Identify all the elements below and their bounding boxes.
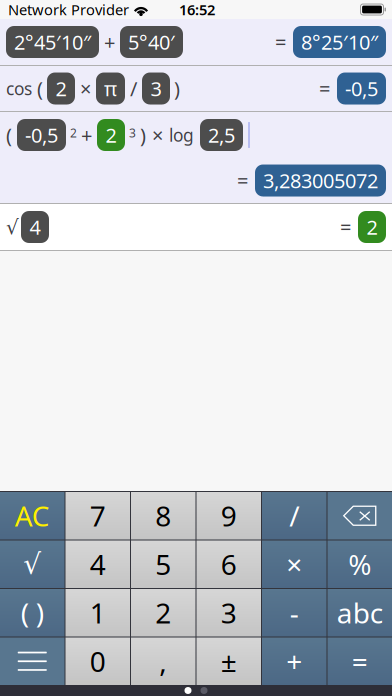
- button[interactable]: √: [0, 540, 64, 588]
- staticText: (: [37, 75, 43, 102]
- staticText: 3: [150, 75, 161, 102]
- staticText: =: [237, 167, 248, 194]
- button[interactable]: 1: [65, 589, 130, 636]
- button[interactable]: AC: [0, 492, 64, 539]
- staticText: 2: [366, 214, 377, 240]
- staticText: Network Provider: [8, 0, 129, 19]
- staticText: log: [169, 123, 194, 146]
- button[interactable]: +: [262, 637, 326, 685]
- staticText: +: [104, 29, 115, 55]
- staticText: 4: [29, 214, 40, 240]
- staticText: 2°45′10″: [14, 29, 91, 55]
- staticText: 0: [90, 643, 106, 680]
- staticText: ×: [152, 122, 163, 148]
- staticText: √: [23, 548, 41, 580]
- staticText: 4: [90, 546, 106, 583]
- button[interactable]: 6: [196, 540, 261, 588]
- staticText: +: [286, 643, 302, 680]
- staticText: ( ): [21, 594, 44, 631]
- staticText: -0,5: [345, 75, 378, 102]
- staticText: ): [174, 75, 180, 102]
- button[interactable]: /: [262, 492, 326, 539]
- staticText: π: [104, 75, 117, 102]
- staticText: 2: [155, 594, 171, 631]
- staticText: 5°40′: [128, 29, 175, 55]
- staticText: 3,283005072: [263, 167, 378, 194]
- staticText: cos: [6, 77, 32, 100]
- staticText: 5: [155, 546, 171, 583]
- button[interactable]: 3: [196, 589, 261, 636]
- button[interactable]: =: [327, 637, 392, 685]
- button[interactable]: Delete: [327, 492, 392, 539]
- button[interactable]: 2: [131, 589, 195, 636]
- staticText: =: [275, 29, 286, 55]
- button[interactable]: 5: [131, 540, 195, 588]
- staticText: 3: [221, 594, 237, 631]
- staticText: (: [6, 122, 12, 148]
- button[interactable]: Menu: [0, 637, 64, 685]
- staticText: 2: [55, 75, 66, 102]
- staticText: 9: [221, 497, 237, 534]
- button[interactable]: ,: [131, 637, 195, 685]
- staticText: /: [130, 75, 137, 102]
- button[interactable]: ×: [262, 540, 326, 588]
- staticText: abc: [337, 594, 383, 631]
- staticText: /: [289, 497, 299, 534]
- staticText: 8: [155, 497, 171, 534]
- staticText: √: [6, 216, 19, 238]
- staticText: ×: [80, 75, 91, 102]
- staticText: 1: [90, 594, 106, 631]
- staticText: 2: [70, 125, 77, 141]
- button[interactable]: 9: [196, 492, 261, 539]
- button[interactable]: abc: [327, 589, 392, 636]
- staticText: 16:52: [179, 0, 215, 19]
- button[interactable]: %: [327, 540, 392, 588]
- staticText: 7: [90, 497, 106, 534]
- staticText: AC: [15, 497, 50, 534]
- staticText: 3: [129, 125, 136, 141]
- staticText: 2,5: [208, 122, 235, 148]
- staticText: =: [340, 214, 351, 240]
- button[interactable]: ( ): [0, 589, 64, 636]
- button[interactable]: 7: [65, 492, 130, 539]
- staticText: -0,5: [25, 122, 58, 148]
- staticText: 2: [105, 122, 116, 148]
- staticText: =: [319, 75, 330, 102]
- button[interactable]: 0: [65, 637, 130, 685]
- staticText: =: [352, 643, 368, 680]
- staticText: %: [348, 546, 371, 583]
- button[interactable]: 4: [65, 540, 130, 588]
- staticText: ,: [159, 643, 167, 680]
- staticText: 8°25′10″: [301, 29, 378, 55]
- button[interactable]: 8: [131, 492, 195, 539]
- staticText: ): [140, 122, 146, 148]
- staticText: ±: [221, 643, 237, 680]
- staticText: +: [81, 122, 92, 148]
- button[interactable]: ±: [196, 637, 261, 685]
- staticText: ×: [286, 546, 302, 583]
- button[interactable]: -: [262, 589, 326, 636]
- staticText: 6: [221, 546, 237, 583]
- staticText: -: [290, 594, 299, 631]
